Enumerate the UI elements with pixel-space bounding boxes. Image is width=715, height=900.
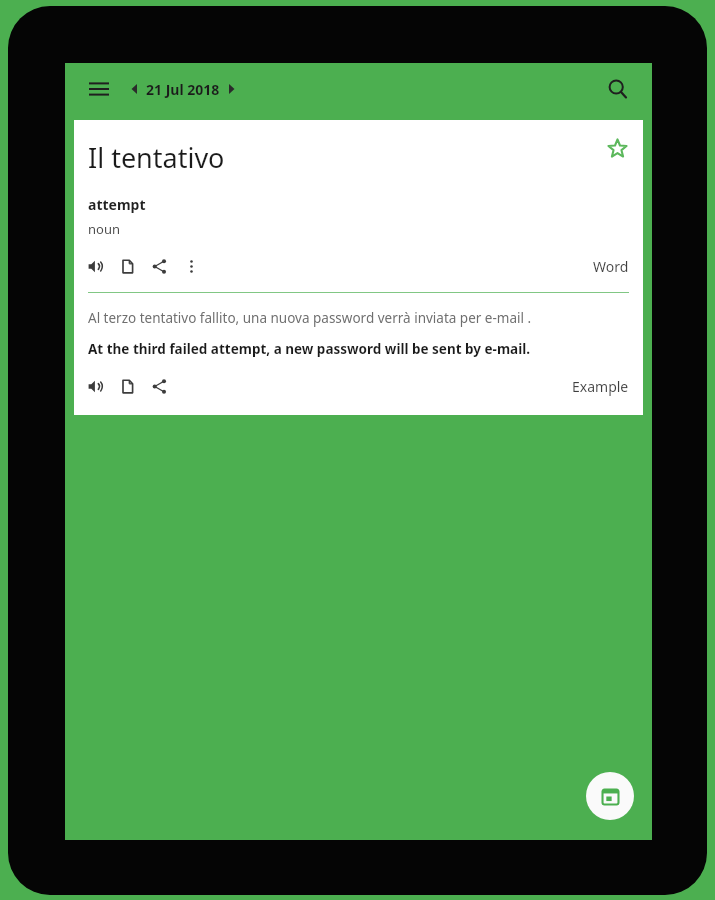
staticText: noun	[88, 220, 120, 238]
button[interactable]: Play audio	[80, 251, 110, 281]
button[interactable]: Previous day	[124, 78, 146, 100]
button[interactable]: Favorite	[600, 131, 634, 165]
button[interactable]: Share	[144, 371, 174, 401]
staticText: Word	[593, 257, 629, 276]
button[interactable]: More options	[176, 251, 206, 281]
button[interactable]: 21 Jul 2018	[146, 80, 220, 99]
staticText: attempt	[88, 195, 146, 214]
button[interactable]: Menu	[82, 72, 116, 106]
button[interactable]: Copy	[112, 371, 142, 401]
button[interactable]: Search	[600, 71, 636, 107]
button[interactable]: Next day	[220, 78, 242, 100]
button[interactable]: Share	[144, 251, 174, 281]
staticText: At the third failed attempt, a new passw…	[88, 340, 531, 358]
staticText: Example	[572, 377, 629, 396]
staticText: Il tentativo	[88, 139, 225, 176]
button[interactable]: Play audio	[80, 371, 110, 401]
button[interactable]: Pick date	[586, 772, 634, 820]
button[interactable]: Copy	[112, 251, 142, 281]
staticText: Al terzo tentativo fallito, una nuova pa…	[88, 309, 532, 327]
